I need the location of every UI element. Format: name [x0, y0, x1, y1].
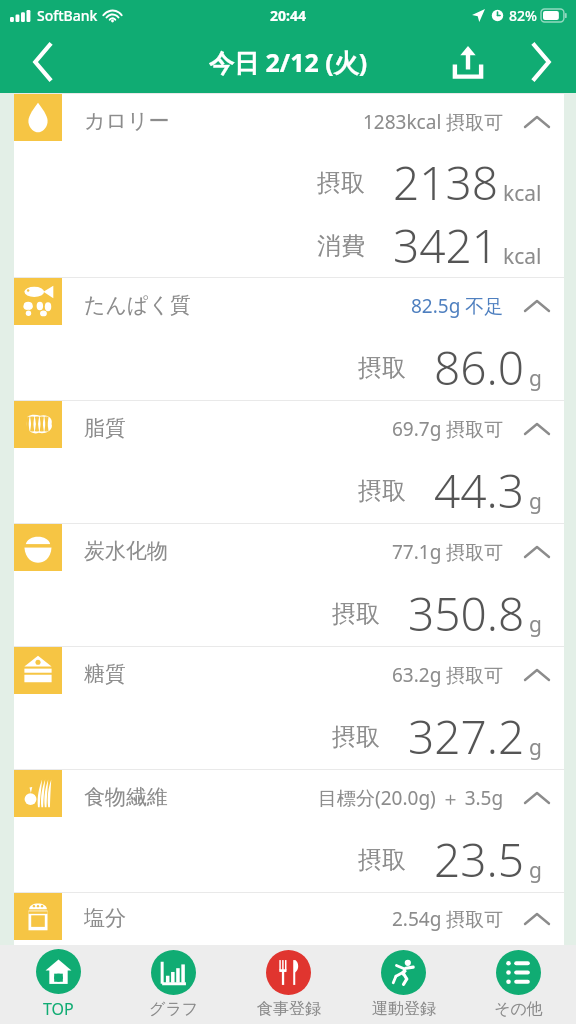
staticText: 86.0 [434, 336, 525, 399]
staticText: 食事登録 [257, 999, 321, 1019]
staticText: その他 [494, 999, 543, 1019]
button[interactable]: 炭水化物 [14, 523, 564, 646]
staticText: 327.2 [408, 705, 525, 768]
button[interactable]: Collapse [522, 783, 552, 813]
staticText: kcal [503, 179, 542, 208]
staticText: 1283kcal 摂取可 [363, 109, 504, 135]
button[interactable]: その他 [461, 945, 576, 1024]
staticText: 23.5 [434, 828, 525, 891]
button[interactable]: Share [430, 31, 506, 93]
button[interactable]: TOP [0, 945, 116, 1024]
staticText: 20:44 [270, 6, 306, 25]
staticText: 摂取 [317, 168, 365, 198]
staticText: 食物繊維 [84, 784, 168, 810]
staticText: 2.54g 摂取可 [392, 906, 504, 932]
staticText: 糖質 [84, 661, 126, 687]
staticText: 目標分(20.0g) ＋ 3.5g [318, 785, 504, 811]
staticText: 消費 [317, 231, 365, 261]
staticText: kcal [503, 242, 542, 271]
button[interactable]: Collapse [522, 291, 552, 321]
staticText: 摂取 [358, 476, 406, 506]
staticText: SoftBank [37, 6, 98, 25]
staticText: 脂質 [84, 415, 126, 441]
button[interactable]: 食物繊維 [14, 769, 564, 892]
staticText: 82% [509, 6, 537, 25]
staticText: g [529, 610, 542, 639]
button[interactable]: Collapse [522, 107, 552, 137]
button[interactable]: 糖質 [14, 646, 564, 769]
staticText: 摂取 [358, 845, 406, 875]
button[interactable]: 脂質 [14, 400, 564, 523]
button[interactable]: 運動登録 [346, 945, 461, 1024]
staticText: 2138 [393, 151, 499, 214]
staticText: TOP [43, 998, 74, 1020]
button[interactable]: Previous day [0, 31, 84, 93]
staticText: グラフ [149, 999, 199, 1019]
staticText: 3421 [393, 214, 499, 277]
button[interactable]: 食事登録 [231, 945, 346, 1024]
staticText: 82.5g 不足 [411, 293, 504, 319]
button[interactable]: Collapse [522, 537, 552, 567]
staticText: g [529, 733, 542, 762]
staticText: g [529, 487, 542, 516]
staticText: 塩分 [84, 905, 126, 931]
staticText: 運動登録 [372, 999, 436, 1019]
button[interactable]: グラフ [116, 945, 231, 1024]
staticText: g [529, 364, 542, 393]
button[interactable]: Collapse [522, 414, 552, 444]
staticText: 摂取 [332, 599, 380, 629]
staticText: 69.7g 摂取可 [392, 416, 504, 442]
staticText: 63.2g 摂取可 [392, 662, 504, 688]
staticText: 350.8 [408, 582, 525, 645]
button[interactable]: カロリー [14, 93, 564, 277]
staticText: 摂取 [358, 353, 406, 383]
button[interactable]: 塩分 [14, 892, 564, 945]
button[interactable]: Next day [506, 31, 576, 93]
staticText: 今日 2/12 (火) [209, 45, 368, 79]
button[interactable]: たんぱく質 [14, 277, 564, 400]
staticText: 摂取 [332, 722, 380, 752]
staticText: 77.1g 摂取可 [392, 539, 504, 565]
staticText: 44.3 [434, 459, 525, 522]
button[interactable]: Collapse [522, 660, 552, 690]
staticText: 炭水化物 [84, 538, 168, 564]
staticText: カロリー [84, 108, 170, 134]
staticText: g [529, 856, 542, 885]
button[interactable]: Collapse [522, 904, 552, 934]
staticText: たんぱく質 [84, 292, 191, 318]
